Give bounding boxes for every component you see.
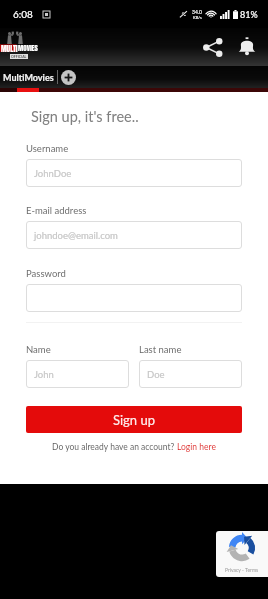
button[interactable]: Sign up: [26, 406, 242, 433]
staticText: Login here: [177, 442, 216, 452]
staticText: johndoe@email.com: [34, 230, 118, 241]
staticText: MultiMovies: [3, 72, 54, 83]
staticText: Sign up, it's free..: [31, 108, 139, 125]
button[interactable]: JohnDoe: [26, 159, 242, 187]
staticText: KB/s: [193, 15, 202, 20]
button[interactable]: Notifications: [230, 30, 264, 64]
staticText: JohnDoe: [34, 168, 72, 179]
staticText: MULTI: [1, 43, 18, 54]
staticText: E-mail address: [26, 205, 87, 216]
button[interactable]: John: [26, 360, 129, 388]
button[interactable]: johndoe@email.com: [26, 221, 242, 249]
staticText: 81%: [240, 9, 258, 20]
staticText: OFFICIAL: [11, 55, 27, 59]
staticText: Privacy - Terms: [225, 567, 259, 573]
button[interactable]: New tab: [58, 67, 78, 87]
staticText: John: [34, 369, 54, 380]
button[interactable]: Share: [196, 30, 230, 64]
button[interactable]: Login here: [177, 442, 216, 452]
button[interactable]: reCAPTCHA: [216, 531, 268, 577]
staticText: 6:08: [13, 8, 33, 20]
staticText: Do you already have an account?: [52, 442, 177, 452]
button[interactable]: MultiMovies: [0, 69, 57, 86]
staticText: Name: [26, 344, 51, 355]
button[interactable]: [26, 284, 242, 312]
button[interactable]: Doe: [139, 360, 242, 388]
staticText: Username: [26, 143, 69, 154]
staticText: Password: [26, 268, 66, 279]
staticText: MOVIES: [18, 43, 38, 54]
staticText: Doe: [147, 369, 165, 380]
staticText: Sign up: [113, 412, 155, 428]
staticText: Last name: [139, 344, 182, 355]
staticText: 34.0: [192, 9, 202, 15]
